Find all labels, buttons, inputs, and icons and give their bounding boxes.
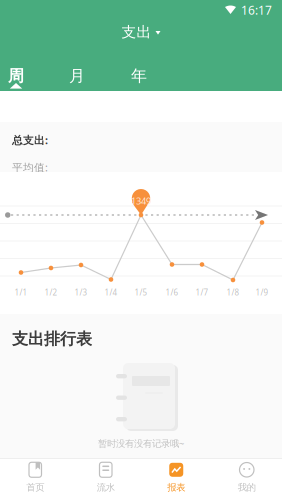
staticText: 1/9 — [255, 287, 268, 298]
button[interactable]: 月 — [55, 66, 99, 91]
staticText: 1/3 — [74, 287, 87, 298]
staticText: 首页 — [26, 482, 44, 493]
staticText: 1/4 — [104, 287, 117, 298]
staticText: 平均值: — [12, 160, 48, 174]
staticText: 支出 — [121, 23, 151, 41]
staticText: 暂时没有没有记录哦~ — [98, 437, 184, 449]
staticText: 流水 — [97, 482, 115, 493]
staticText: 1/1 — [14, 287, 27, 298]
staticText: 年 — [131, 66, 147, 86]
staticText: 1/7 — [195, 287, 208, 298]
staticText: 1/5 — [134, 287, 147, 298]
staticText: 我的 — [238, 482, 256, 493]
button[interactable]: 支出 — [96, 21, 186, 43]
staticText: 1/2 — [44, 287, 57, 298]
button[interactable]: 流水 — [70, 458, 141, 500]
staticText: 周 — [8, 66, 24, 86]
button[interactable]: 周 — [0, 66, 38, 91]
staticText: 报表 — [167, 482, 185, 493]
staticText: 16:17 — [241, 2, 272, 18]
staticText: 1/8 — [226, 287, 239, 298]
staticText: 1/6 — [165, 287, 178, 298]
staticText: 月 — [69, 66, 85, 86]
staticText: 总支出: — [12, 133, 48, 147]
button[interactable]: 首页 — [0, 458, 70, 500]
button[interactable]: 年 — [117, 66, 161, 91]
staticText: 1349 — [131, 195, 151, 207]
button[interactable]: 我的 — [211, 458, 282, 500]
button[interactable]: 报表 — [141, 458, 211, 500]
staticText: 支出排行表 — [12, 329, 92, 349]
